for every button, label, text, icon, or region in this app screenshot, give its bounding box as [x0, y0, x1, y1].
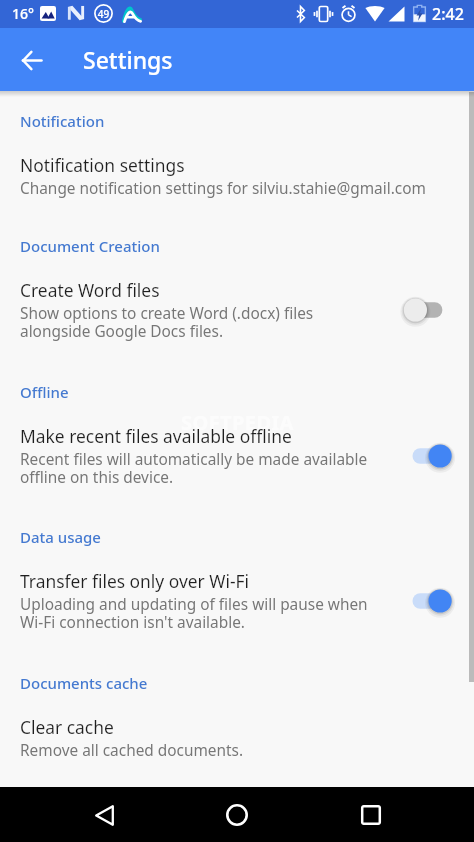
button[interactable] — [0, 278, 474, 328]
staticText: Settings — [83, 44, 173, 75]
button[interactable]: Disabled — [396, 292, 450, 328]
button[interactable]: Back — [80, 791, 128, 839]
button[interactable] — [0, 569, 474, 619]
button[interactable]: Recent apps — [347, 791, 395, 839]
staticText: Uploading and updating of files will pau… — [20, 594, 372, 632]
staticText: Transfer files only over Wi-Fi — [20, 569, 250, 593]
button[interactable] — [0, 715, 474, 747]
staticText: Document Creation — [20, 236, 160, 256]
staticText: Documents cache — [20, 673, 148, 693]
staticText: Make recent files available offline — [20, 424, 292, 448]
staticText: Offline — [20, 382, 69, 402]
button[interactable] — [0, 153, 474, 203]
staticText: Remove all cached documents. — [20, 740, 460, 761]
staticText: Show options to create Word (.docx) file… — [20, 303, 372, 341]
staticText: Recent files will automatically be made … — [20, 449, 372, 487]
staticText: Create Word files — [20, 278, 160, 302]
button[interactable] — [0, 424, 474, 474]
staticText: SOFTPEDIA — [181, 409, 294, 436]
button[interactable]: Home — [213, 791, 261, 839]
staticText: 49 — [96, 7, 111, 21]
button[interactable]: Navigate up — [11, 39, 53, 81]
staticText: Clear cache — [20, 715, 114, 739]
staticText: Notification settings — [20, 153, 185, 177]
staticText: 16° — [12, 4, 34, 23]
staticText: Notification — [20, 111, 105, 131]
button[interactable]: Enabled — [396, 438, 450, 474]
staticText: Data usage — [20, 527, 101, 547]
staticText: Change notification settings for silviu.… — [20, 178, 460, 199]
staticText: 2:42 — [432, 3, 464, 25]
button[interactable]: Enabled — [396, 583, 450, 619]
